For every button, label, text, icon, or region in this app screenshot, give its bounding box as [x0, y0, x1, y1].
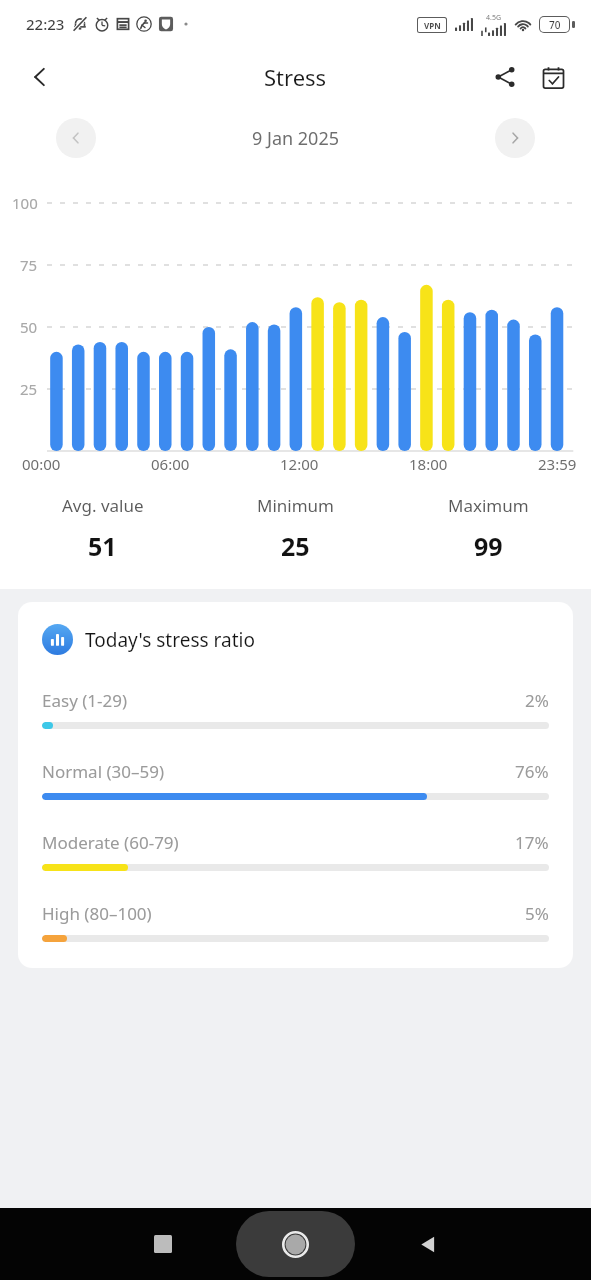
- staticText: Normal (30–59): [42, 760, 165, 783]
- button[interactable]: Today's stress ratio: [18, 602, 573, 968]
- staticText: 5%: [525, 902, 549, 925]
- staticText: 9 Jan 2025: [252, 126, 339, 151]
- button[interactable]: Back: [14, 51, 66, 103]
- staticText: 12:00: [280, 454, 319, 474]
- staticText: 4.5G: [486, 13, 501, 23]
- staticText: 00:00: [22, 454, 61, 474]
- button[interactable]: Recent apps: [140, 1221, 186, 1267]
- staticText: 18:00: [409, 454, 448, 474]
- button[interactable]: Next day: [495, 118, 535, 158]
- staticText: Easy (1-29): [42, 689, 128, 712]
- staticText: Stress: [264, 62, 327, 92]
- staticText: 2%: [525, 689, 549, 712]
- staticText: 25: [281, 529, 310, 563]
- button[interactable]: Share: [481, 53, 529, 101]
- staticText: Today's stress ratio: [85, 627, 255, 653]
- staticText: 99: [474, 529, 503, 563]
- staticText: 22:23: [26, 14, 65, 34]
- staticText: 23:59: [538, 454, 577, 474]
- button[interactable]: Previous day: [56, 118, 96, 158]
- staticText: VPN: [424, 20, 441, 31]
- staticText: 17%: [515, 831, 549, 854]
- staticText: Minimum: [257, 494, 334, 517]
- button[interactable]: Back: [406, 1221, 452, 1267]
- staticText: 50: [20, 317, 38, 337]
- staticText: 70: [549, 18, 561, 32]
- staticText: 100: [12, 193, 38, 213]
- staticText: Maximum: [448, 494, 529, 517]
- staticText: 75: [20, 255, 38, 275]
- button[interactable]: Calendar: [529, 53, 577, 101]
- staticText: 25: [20, 379, 38, 399]
- staticText: 06:00: [151, 454, 190, 474]
- staticText: 51: [88, 529, 117, 563]
- staticText: High (80–100): [42, 902, 152, 925]
- button[interactable]: Home: [236, 1211, 355, 1277]
- staticText: 76%: [515, 760, 549, 783]
- staticText: Moderate (60-79): [42, 831, 179, 854]
- staticText: Avg. value: [62, 494, 144, 517]
